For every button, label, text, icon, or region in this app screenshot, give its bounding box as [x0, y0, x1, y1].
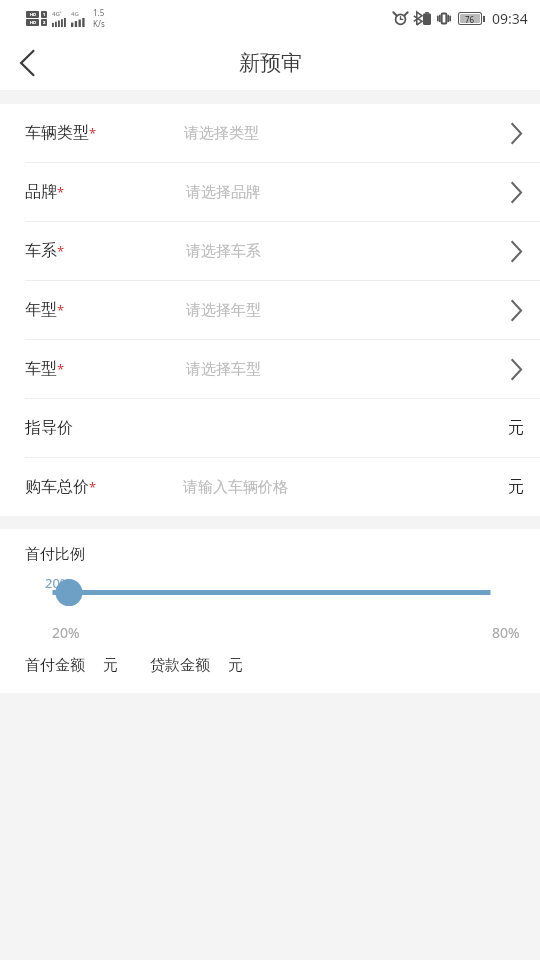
staticText: 20%: [52, 623, 80, 642]
staticText: 09:34: [492, 9, 528, 28]
staticText: 指导价: [25, 418, 73, 438]
staticText: 76: [465, 14, 475, 23]
staticText: 80%: [492, 623, 520, 642]
staticText: 购车总价*: [25, 477, 97, 497]
staticText: 新预审: [239, 50, 302, 76]
button[interactable]: 车型*: [0, 340, 540, 398]
staticText: 首付金额: [25, 656, 85, 675]
staticText: 元: [508, 418, 524, 438]
staticText: 首付比例: [25, 545, 85, 564]
staticText: 元: [103, 656, 118, 675]
staticText: 年型*: [25, 300, 65, 320]
staticText: 请选择年型: [186, 301, 261, 320]
button[interactable]: 购车总价*: [0, 458, 540, 516]
staticText: 元: [508, 477, 524, 497]
staticText: 请选择品牌: [186, 183, 261, 202]
staticText: 请选择车型: [186, 360, 261, 379]
button[interactable]: 返回: [0, 36, 54, 90]
staticText: 1: [43, 12, 46, 17]
staticText: 品牌*: [25, 182, 65, 202]
staticText: 2: [43, 20, 46, 25]
staticText: 4G⁺: [52, 10, 62, 18]
staticText: 贷款金额: [150, 656, 210, 675]
staticText: 1.5: [93, 7, 105, 18]
staticText: HD: [30, 12, 36, 17]
staticText: 车系*: [25, 241, 65, 261]
staticText: 4G: [71, 10, 79, 18]
button[interactable]: 首付比例滑块: [0, 574, 540, 604]
staticText: 车辆类型*: [25, 123, 97, 143]
staticText: K/s: [93, 18, 105, 29]
staticText: 请选择类型: [184, 124, 259, 143]
staticText: 车型*: [25, 359, 65, 379]
staticText: 20%: [45, 574, 71, 592]
button[interactable]: 车系*: [0, 222, 540, 280]
staticText: HD: [30, 20, 36, 25]
button[interactable]: 指导价: [0, 399, 540, 457]
button[interactable]: 车辆类型*: [0, 104, 540, 162]
button[interactable]: 年型*: [0, 281, 540, 339]
staticText: 请选择车系: [186, 242, 261, 261]
staticText: 元: [228, 656, 243, 675]
button[interactable]: 品牌*: [0, 163, 540, 221]
staticText: 请输入车辆价格: [183, 478, 288, 497]
